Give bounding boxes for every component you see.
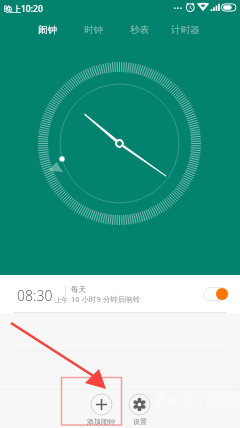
staticText: 08:30 — [17, 286, 53, 305]
staticText: 闹钟 — [38, 24, 57, 36]
staticText: 每天 — [71, 285, 86, 294]
button[interactable]: 08:30 — [0, 275, 240, 313]
staticText: 时钟 — [84, 24, 103, 36]
staticText: 上午 — [55, 296, 68, 304]
staticText: 添加闹钟 — [87, 417, 115, 426]
button[interactable]: 设置 — [125, 389, 154, 428]
staticText: 计时器 — [171, 24, 200, 36]
button[interactable]: 闹钟 — [24, 19, 70, 41]
button[interactable]: 秒表 — [116, 19, 162, 41]
button[interactable]: 时钟 — [70, 19, 116, 41]
staticText: 秒表 — [130, 24, 149, 36]
button[interactable]: Toggle alarm — [203, 287, 229, 301]
staticText: 晚上10:20 — [4, 3, 43, 15]
button[interactable]: 添加闹钟 — [78, 389, 123, 428]
staticText: 设置 — [133, 417, 147, 426]
button[interactable]: 计时器 — [162, 19, 208, 41]
staticText: 10 小时9 分钟后响铃 — [71, 294, 141, 304]
